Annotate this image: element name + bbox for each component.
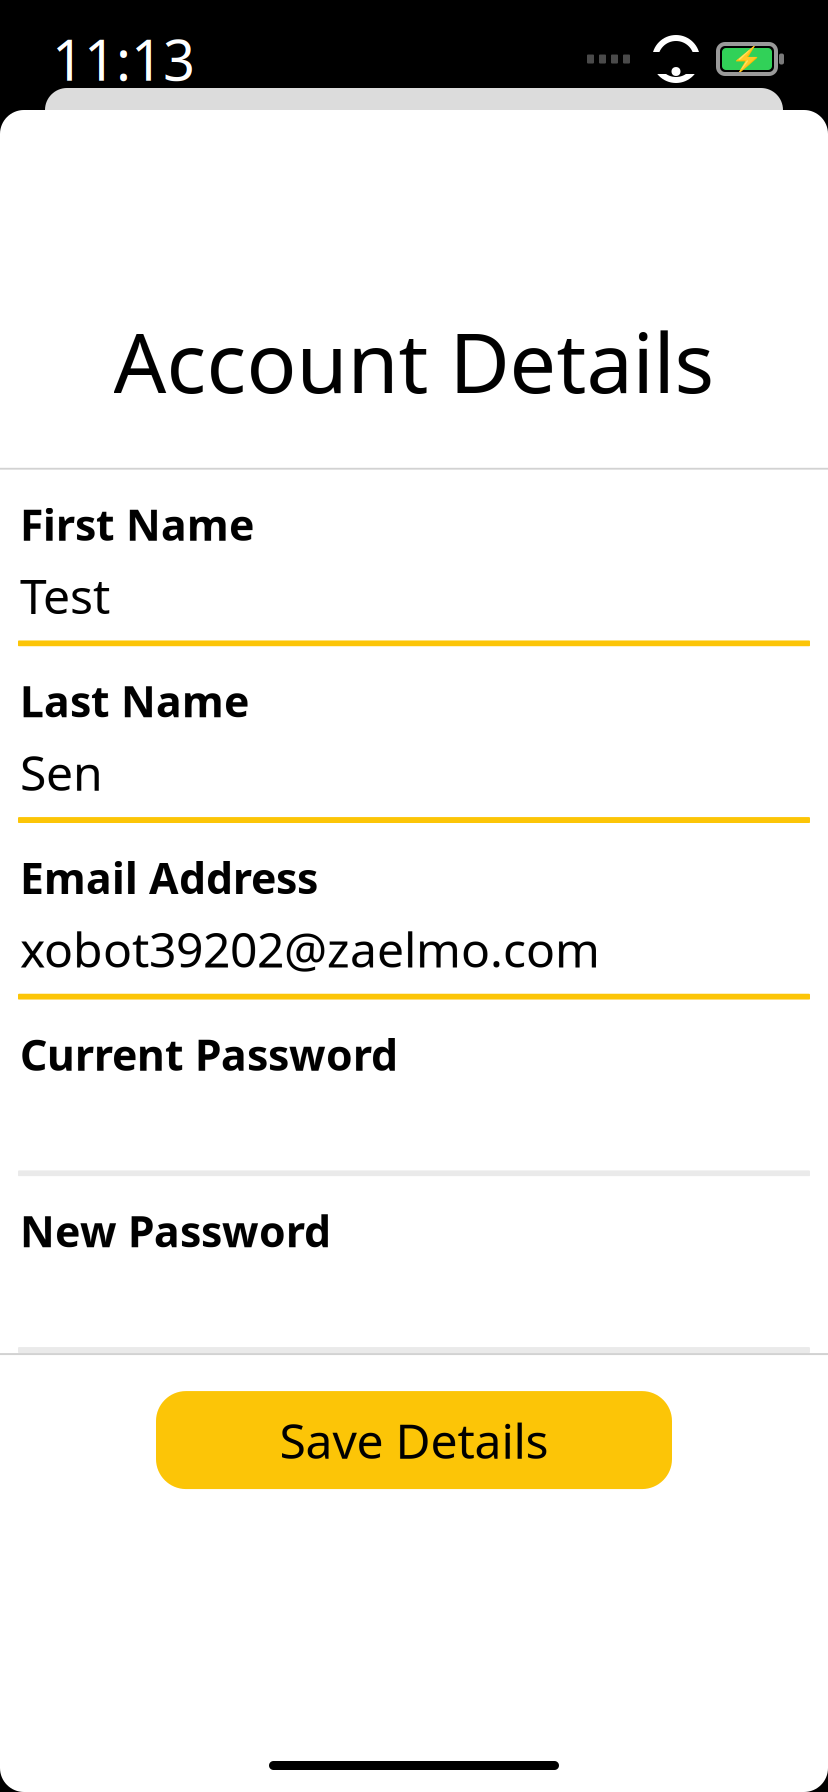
staticText: Sen	[20, 740, 103, 804]
button[interactable]: Email Address	[0, 823, 828, 1000]
button[interactable]: Save Details	[156, 1391, 672, 1489]
button[interactable]: First Name	[0, 470, 828, 646]
staticText: First Name	[20, 496, 254, 552]
staticText: ⚡	[731, 44, 763, 73]
staticText: Current Password	[20, 1026, 398, 1082]
staticText: New Password	[20, 1202, 331, 1259]
staticText: Test	[20, 564, 110, 627]
button[interactable]: Last Name	[0, 646, 828, 823]
staticText: xobot39202@zaelmo.com	[20, 917, 600, 981]
staticText: Save Details	[279, 1408, 548, 1472]
staticText: Email Address	[20, 849, 318, 906]
button[interactable]: Current Password	[0, 1000, 828, 1176]
staticText: Account Details	[113, 306, 714, 416]
button[interactable]: New Password	[0, 1176, 828, 1353]
staticText: 11:13	[52, 22, 195, 96]
staticText: Last Name	[20, 672, 249, 729]
